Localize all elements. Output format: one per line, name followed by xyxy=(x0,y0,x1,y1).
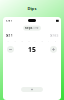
staticText: 8 xyxy=(55,40,56,42)
staticText: ▮▮▮ xyxy=(55,19,58,22)
staticText: 10 xyxy=(41,40,43,42)
staticText: Time xyxy=(33,26,39,30)
staticText: 15 xyxy=(7,40,9,42)
staticText: Set 1 xyxy=(6,34,13,37)
staticText: 15 xyxy=(28,45,36,54)
staticText: 9 xyxy=(48,40,49,42)
staticText: 13 xyxy=(21,40,23,42)
button[interactable]: Increase xyxy=(50,46,57,53)
staticText: Dips xyxy=(27,6,36,11)
staticText: 12 xyxy=(28,40,30,42)
staticText: 14 xyxy=(14,40,16,42)
button[interactable]: Decrease xyxy=(7,46,14,53)
staticText: Reps xyxy=(25,26,32,30)
staticText: 9:41 xyxy=(5,19,12,22)
staticText: Series xyxy=(50,34,58,37)
